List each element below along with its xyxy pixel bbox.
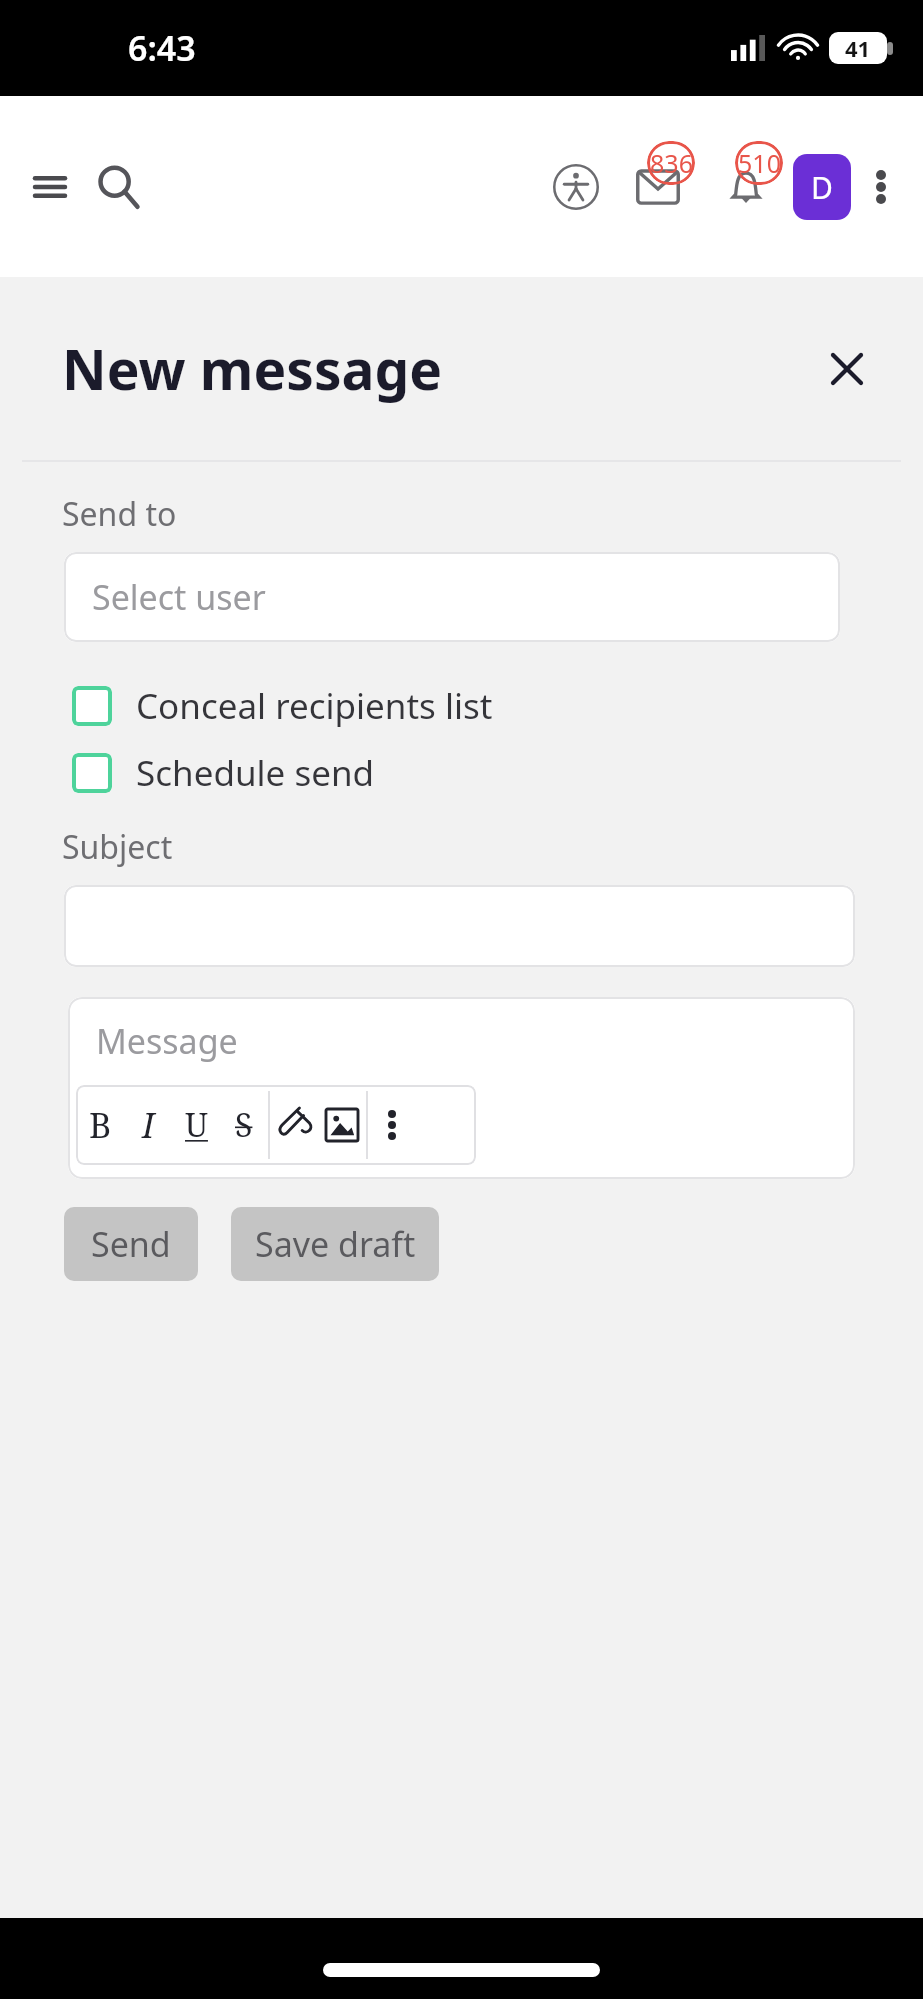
button[interactable]: Subject: [64, 885, 855, 967]
staticText: U: [185, 1103, 208, 1147]
staticText: 836: [650, 146, 693, 180]
button[interactable]: Underline: [172, 1085, 220, 1165]
button[interactable]: Italic: [124, 1085, 172, 1165]
staticText: 41: [845, 33, 871, 63]
staticText: Subject: [62, 825, 173, 869]
staticText: New message: [62, 331, 443, 406]
staticText: Send: [91, 1221, 171, 1267]
button[interactable]: Schedule send: [72, 749, 883, 797]
button[interactable]: Send: [64, 1207, 198, 1281]
button[interactable]: Conceal recipients list: [72, 682, 883, 730]
staticText: S: [235, 1103, 253, 1147]
button[interactable]: More formatting: [368, 1085, 416, 1165]
button[interactable]: Accessibility: [543, 154, 609, 220]
staticText: B: [89, 1102, 112, 1148]
button[interactable]: Select user: [64, 552, 840, 642]
staticText: Send to: [62, 492, 177, 536]
button[interactable]: Close: [815, 337, 879, 401]
staticText: 6:43: [128, 25, 196, 71]
staticText: Select user: [92, 574, 266, 620]
button[interactable]: Bold: [76, 1085, 124, 1165]
button[interactable]: D: [789, 152, 855, 222]
button[interactable]: Strikethrough: [220, 1085, 268, 1165]
button[interactable]: Menu: [20, 157, 80, 217]
staticText: I: [142, 1102, 155, 1148]
staticText: Schedule send: [136, 749, 375, 797]
staticText: Save draft: [255, 1221, 416, 1267]
button[interactable]: Search: [86, 154, 152, 220]
staticText: Message: [96, 1018, 238, 1064]
staticText: Conceal recipients list: [136, 682, 493, 730]
staticText: D: [811, 167, 833, 208]
button[interactable]: Messages: [621, 139, 695, 235]
button[interactable]: Notifications: [709, 139, 783, 235]
button[interactable]: More options: [855, 154, 907, 220]
button[interactable]: Save draft: [231, 1207, 439, 1281]
button[interactable]: Insert image: [318, 1085, 366, 1165]
button[interactable]: Attach file: [270, 1085, 318, 1165]
button[interactable]: Message: [68, 997, 855, 1085]
staticText: 510: [738, 146, 781, 180]
